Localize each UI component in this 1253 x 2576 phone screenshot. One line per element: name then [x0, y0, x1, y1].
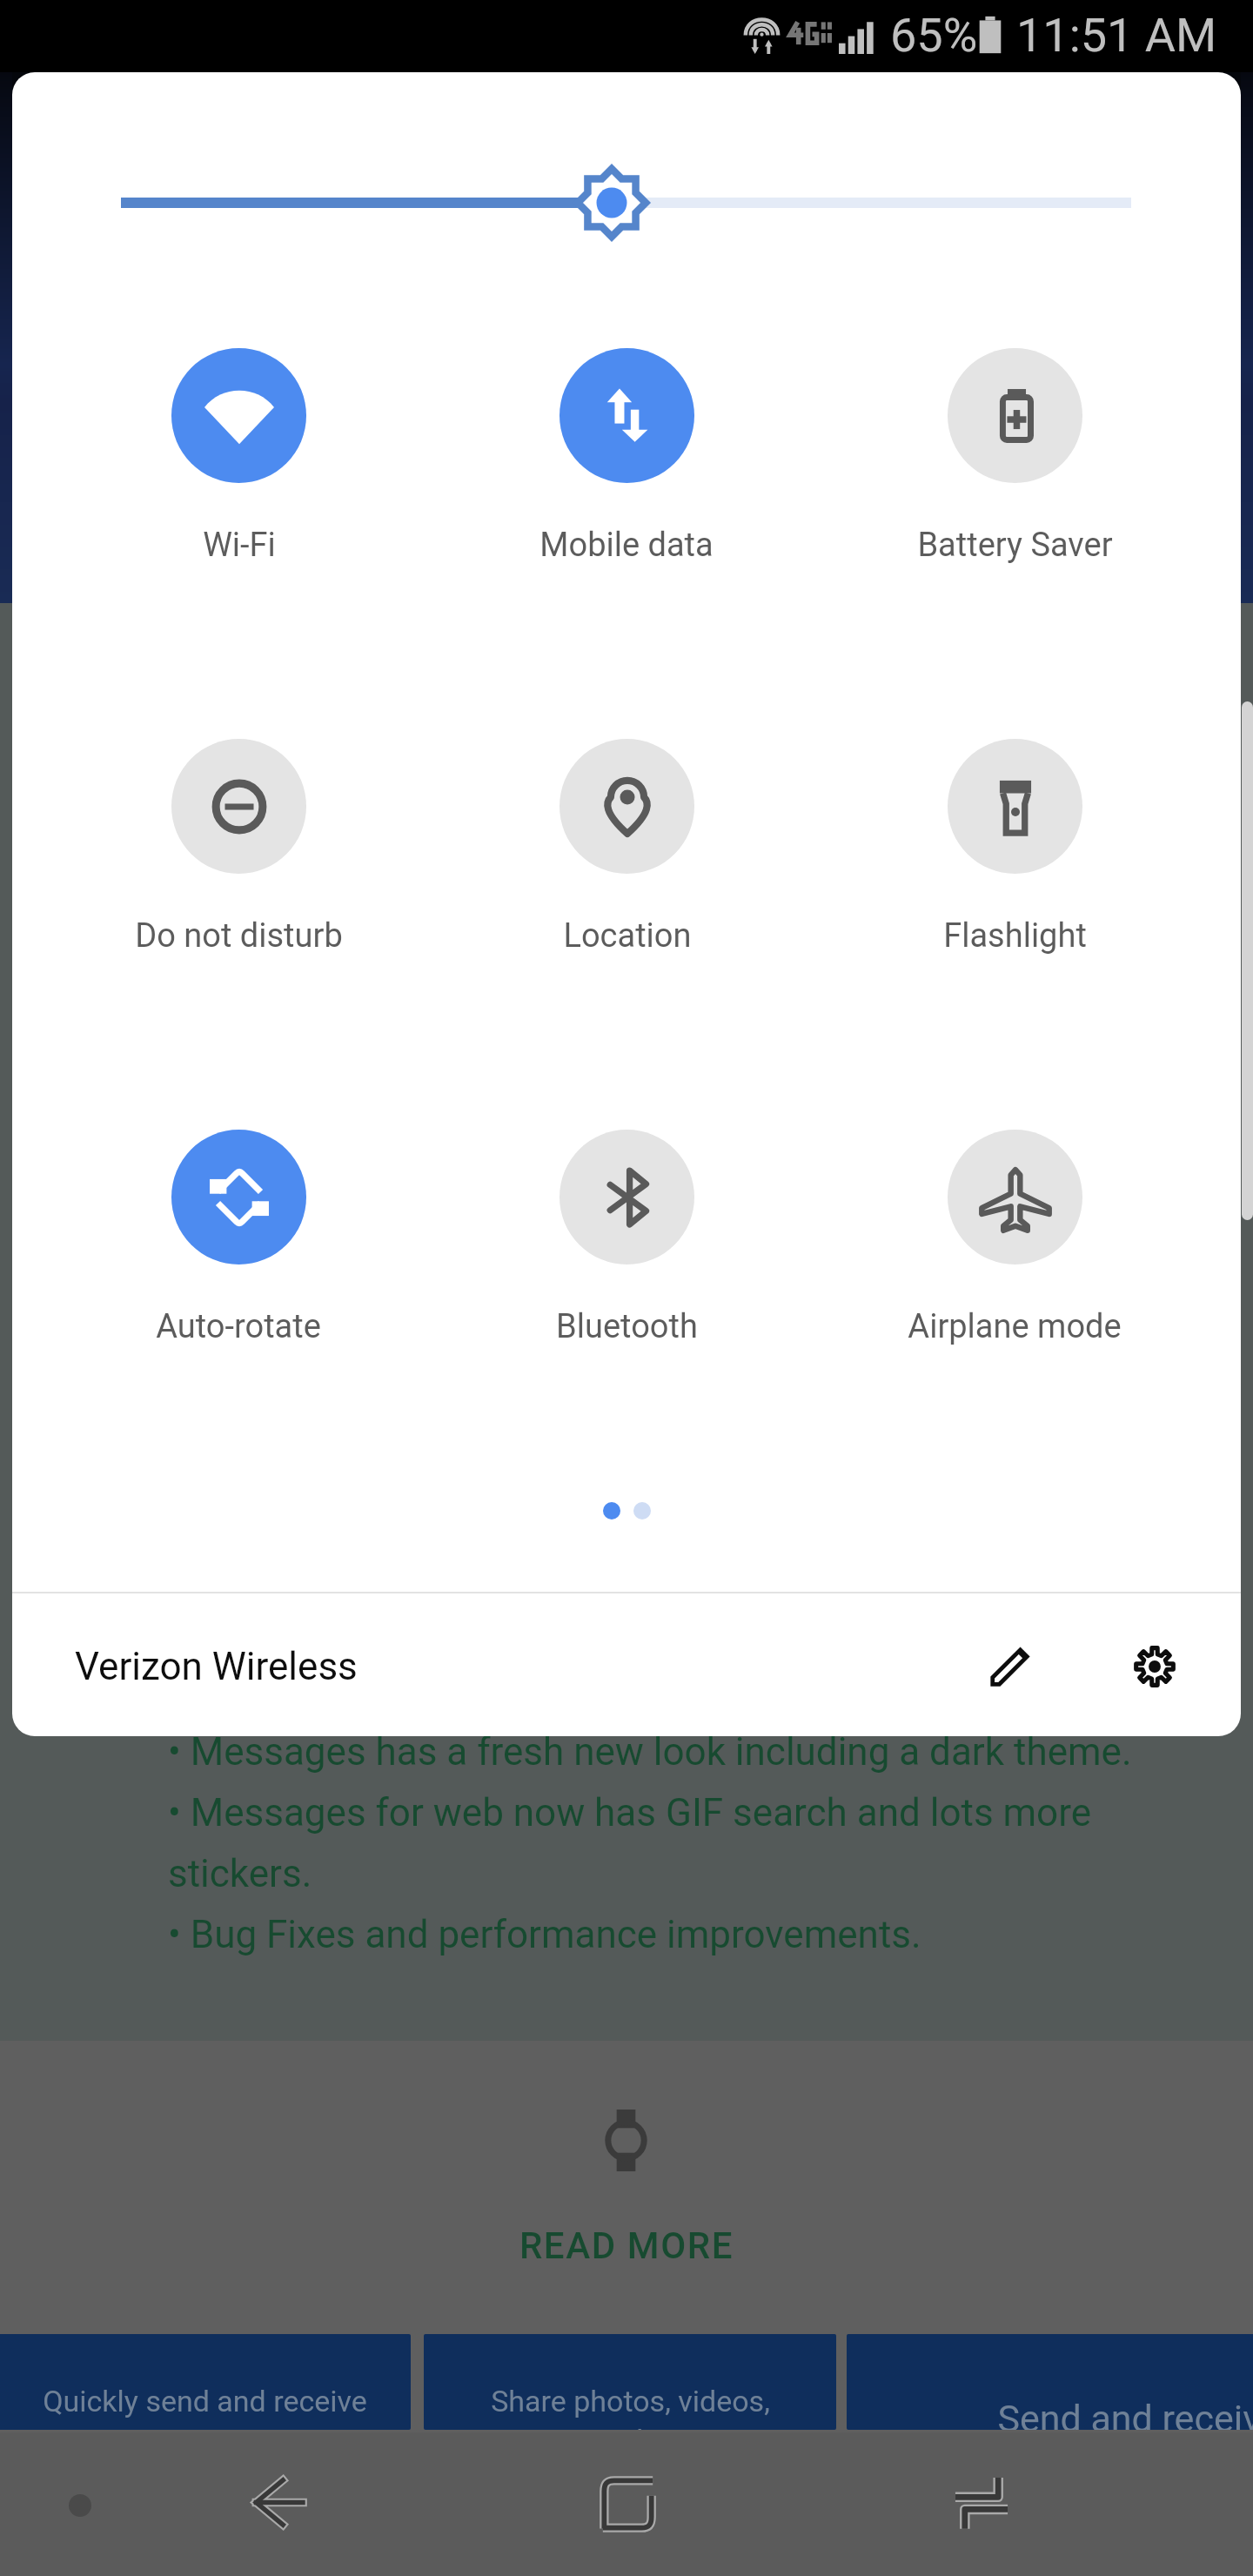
staticText: Share photos, videos, GIF and more: [491, 2384, 770, 2430]
button[interactable]: Mobile data: [432, 348, 821, 609]
button[interactable]: Quickly send and receive SMS: [0, 2334, 411, 2430]
staticText: Airplane mode: [908, 1307, 1122, 1346]
button[interactable]: Flashlight: [821, 739, 1209, 1000]
button[interactable]: Share photos, videos, GIF and more: [424, 2334, 836, 2430]
staticText: Do not disturb: [135, 916, 343, 956]
button[interactable]: Location: [432, 739, 821, 1000]
button[interactable]: READ MORE: [348, 2211, 905, 2279]
staticText: Mobile data: [539, 526, 714, 565]
staticText: Location: [563, 916, 692, 956]
staticText: 65%: [890, 8, 978, 63]
staticText: • Bug Fixes and performance improvements…: [168, 1912, 921, 1957]
button[interactable]: Wi-Fi: [44, 348, 432, 609]
staticText: • Messages has a fresh new look includin…: [168, 1729, 1132, 1774]
staticText: Battery Saver: [917, 526, 1113, 565]
staticText: Quickly send and receive SMS: [43, 2384, 367, 2430]
button[interactable]: Bluetooth: [432, 1130, 821, 1391]
button[interactable]: Airplane mode: [821, 1130, 1209, 1391]
button[interactable]: Auto-rotate: [44, 1130, 432, 1391]
button[interactable]: Settings: [1098, 1610, 1211, 1723]
staticText: Auto-rotate: [156, 1307, 321, 1346]
button[interactable]: Back: [253, 2478, 303, 2527]
staticText: READ MORE: [519, 2224, 734, 2267]
staticText: Verizon Wireless: [75, 1644, 358, 1689]
button[interactable]: Assistant: [61, 2486, 99, 2525]
button[interactable]: Home: [601, 2478, 654, 2531]
staticText: • Messages for web now has GIF search an…: [168, 1790, 1092, 1835]
staticText: stickers.: [168, 1851, 312, 1896]
button[interactable]: Battery Saver: [821, 348, 1209, 609]
staticText: Wi-Fi: [203, 526, 276, 565]
button[interactable]: Recent apps: [954, 2476, 1009, 2532]
staticText: Send and receive messages: [997, 2397, 1253, 2430]
button[interactable]: Send and receive messages: [847, 2334, 1253, 2430]
button[interactable]: Edit: [953, 1610, 1066, 1723]
button[interactable]: Do not disturb: [44, 739, 432, 1000]
staticText: 11:51 AM: [1016, 8, 1217, 63]
staticText: Bluetooth: [556, 1307, 698, 1346]
staticText: Flashlight: [943, 916, 1087, 956]
